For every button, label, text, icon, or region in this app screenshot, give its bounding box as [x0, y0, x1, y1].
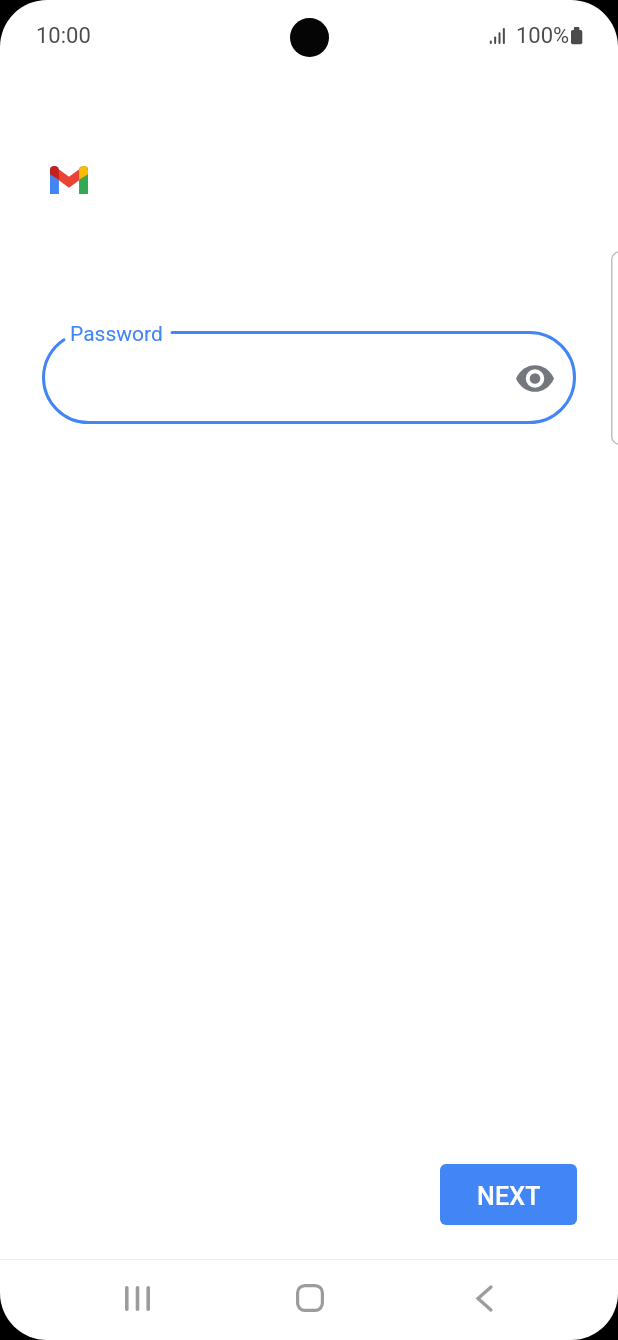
- button[interactable]: Back: [412, 1260, 618, 1340]
- button[interactable]: NEXT: [440, 1164, 577, 1225]
- staticText: Password: [70, 322, 163, 347]
- staticText: NEXT: [477, 1182, 541, 1211]
- button[interactable]: Recent apps: [0, 1260, 206, 1340]
- button[interactable]: Show password: [511, 354, 559, 402]
- button[interactable]: Password: [42, 331, 576, 424]
- button[interactable]: Home: [206, 1260, 412, 1340]
- staticText: 10:00: [36, 23, 91, 49]
- staticText: 100%: [516, 23, 570, 49]
